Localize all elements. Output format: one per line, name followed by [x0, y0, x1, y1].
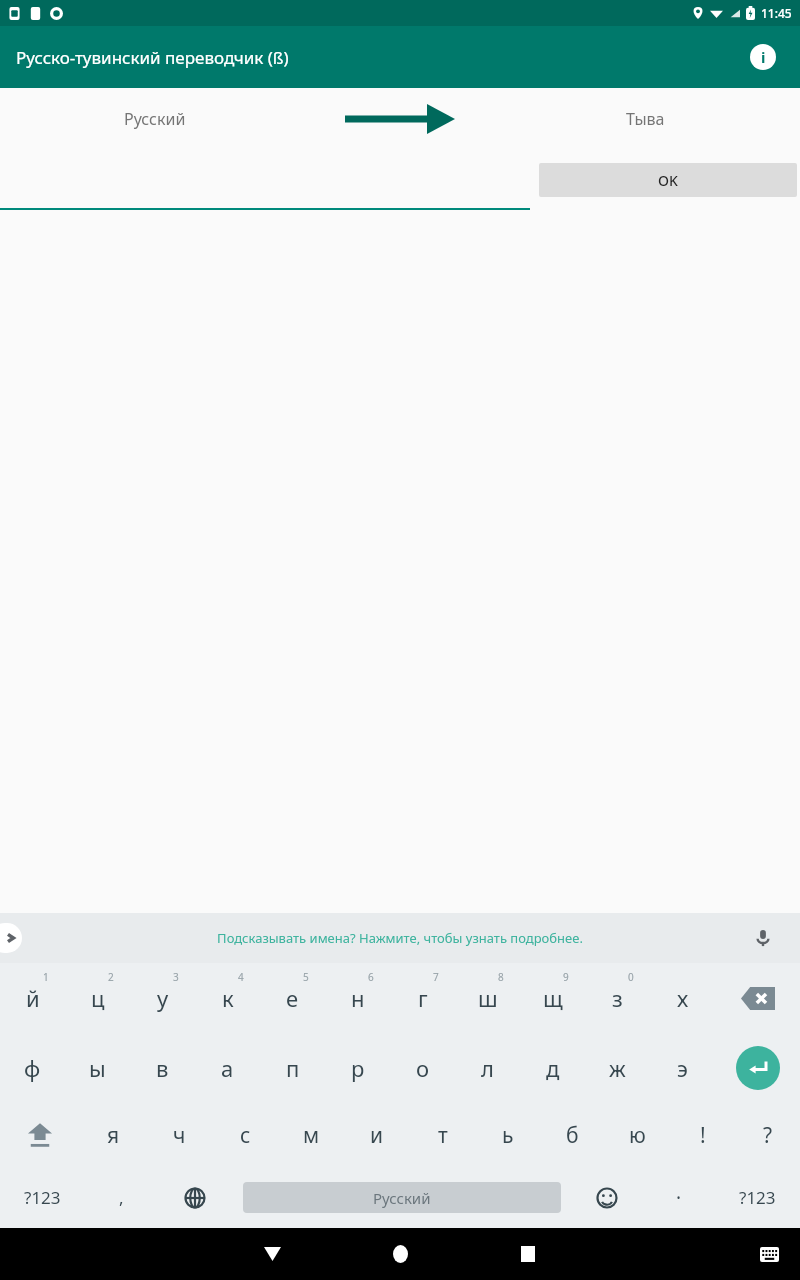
staticText: ? — [763, 1121, 773, 1150]
staticText: п — [286, 1053, 300, 1083]
button[interactable]: т — [410, 1103, 475, 1167]
button[interactable]: Удалить — [715, 963, 800, 1033]
button[interactable]: Поменять языки — [310, 88, 490, 150]
button[interactable]: ф — [0, 1033, 65, 1103]
staticText: Тыва — [626, 108, 665, 130]
staticText: 5 — [303, 970, 309, 984]
button[interactable]: 4 — [195, 963, 260, 1033]
button[interactable]: 7 — [390, 963, 455, 1033]
staticText: , — [119, 1186, 124, 1209]
staticText: ы — [89, 1053, 106, 1083]
staticText: ж — [609, 1053, 626, 1083]
staticText: 4 — [238, 970, 244, 984]
button[interactable]: о — [390, 1033, 455, 1103]
staticText: м — [303, 1121, 320, 1150]
staticText: в — [156, 1053, 169, 1083]
staticText: 11:45 — [761, 5, 792, 21]
button[interactable]: , — [85, 1167, 157, 1228]
button[interactable]: 8 — [455, 963, 520, 1033]
button[interactable]: 5 — [260, 963, 325, 1033]
button[interactable]: б — [540, 1103, 605, 1167]
staticText: л — [481, 1053, 494, 1083]
button[interactable]: Главный экран — [379, 1233, 421, 1275]
button[interactable]: 2 — [65, 963, 130, 1033]
button[interactable]: ? — [735, 1103, 800, 1167]
button[interactable]: 3 — [130, 963, 195, 1033]
staticText: н — [351, 983, 365, 1013]
staticText: э — [677, 1053, 688, 1083]
button[interactable]: а — [195, 1033, 260, 1103]
staticText: ?123 — [739, 1186, 776, 1209]
button[interactable]: 0 — [585, 963, 650, 1033]
button[interactable]: Подсказывать имена? Нажмите, чтобы узнат… — [217, 929, 583, 947]
staticText: щ — [543, 983, 563, 1013]
button[interactable]: в — [130, 1033, 195, 1103]
staticText: 3 — [173, 970, 179, 984]
button[interactable]: Скрыть клавиатуру — [752, 1237, 786, 1271]
button[interactable]: Shift — [0, 1103, 80, 1167]
button[interactable]: ! — [670, 1103, 735, 1167]
button[interactable]: 9 — [520, 963, 585, 1033]
button[interactable]: и — [344, 1103, 410, 1167]
staticText: i — [761, 47, 766, 67]
button[interactable]: д — [520, 1033, 585, 1103]
button[interactable]: ч — [146, 1103, 212, 1167]
button[interactable]: Назад — [251, 1233, 293, 1275]
staticText: у — [157, 983, 169, 1013]
staticText: ш — [478, 983, 498, 1013]
button[interactable]: ю — [605, 1103, 670, 1167]
staticText: OK — [658, 171, 678, 190]
button[interactable]: ы — [65, 1033, 130, 1103]
staticText: с — [240, 1121, 251, 1150]
staticText: р — [351, 1053, 365, 1083]
button[interactable]: Эмодзи — [571, 1167, 643, 1228]
staticText: 1 — [43, 970, 49, 984]
button[interactable]: р — [325, 1033, 390, 1103]
button[interactable]: Русский — [243, 1182, 561, 1213]
staticText: 7 — [433, 970, 439, 984]
staticText: о — [416, 1053, 430, 1083]
staticText: 2 — [108, 970, 114, 984]
button[interactable]: Развернуть — [0, 923, 22, 953]
staticText: 6 — [368, 970, 374, 984]
button[interactable]: Голосовой ввод — [748, 923, 778, 953]
button[interactable]: Русский — [0, 88, 310, 150]
button[interactable]: л — [455, 1033, 520, 1103]
button[interactable]: ?123 — [0, 1167, 85, 1228]
staticText: Русский — [373, 1188, 431, 1208]
button[interactable]: я — [80, 1103, 146, 1167]
button[interactable]: Информация — [748, 42, 778, 72]
button[interactable]: Сменить язык — [157, 1167, 233, 1228]
button[interactable]: ?123 — [715, 1167, 800, 1228]
staticText: и — [370, 1121, 384, 1150]
staticText: · — [676, 1185, 682, 1211]
button[interactable]: э — [650, 1033, 715, 1103]
staticText: ц — [91, 983, 105, 1013]
button[interactable]: Тыва — [490, 88, 800, 150]
button[interactable]: п — [260, 1033, 325, 1103]
button[interactable]: ь — [475, 1103, 540, 1167]
staticText: з — [612, 983, 623, 1013]
button[interactable]: с — [212, 1103, 278, 1167]
button[interactable]: 1 — [0, 963, 65, 1033]
staticText: х — [677, 983, 689, 1013]
staticText: Русско-тувинский переводчик (ß) — [16, 46, 289, 69]
button[interactable]: OK — [539, 163, 797, 197]
staticText: ю — [629, 1121, 646, 1150]
staticText: ! — [700, 1121, 706, 1150]
staticText: я — [107, 1121, 120, 1150]
staticText: ч — [173, 1121, 186, 1150]
button[interactable]: · — [643, 1167, 715, 1228]
button[interactable]: ж — [585, 1033, 650, 1103]
staticText: ф — [24, 1053, 41, 1083]
staticText: й — [26, 983, 40, 1013]
staticText: ?123 — [24, 1186, 61, 1209]
button[interactable]: х — [650, 963, 715, 1033]
button[interactable]: м — [278, 1103, 344, 1167]
staticText: г — [418, 983, 428, 1013]
button[interactable]: Ввод — [715, 1033, 800, 1103]
staticText: 9 — [563, 970, 569, 984]
staticText: к — [222, 983, 234, 1013]
button[interactable]: 6 — [325, 963, 390, 1033]
button[interactable]: Обзор — [507, 1233, 549, 1275]
